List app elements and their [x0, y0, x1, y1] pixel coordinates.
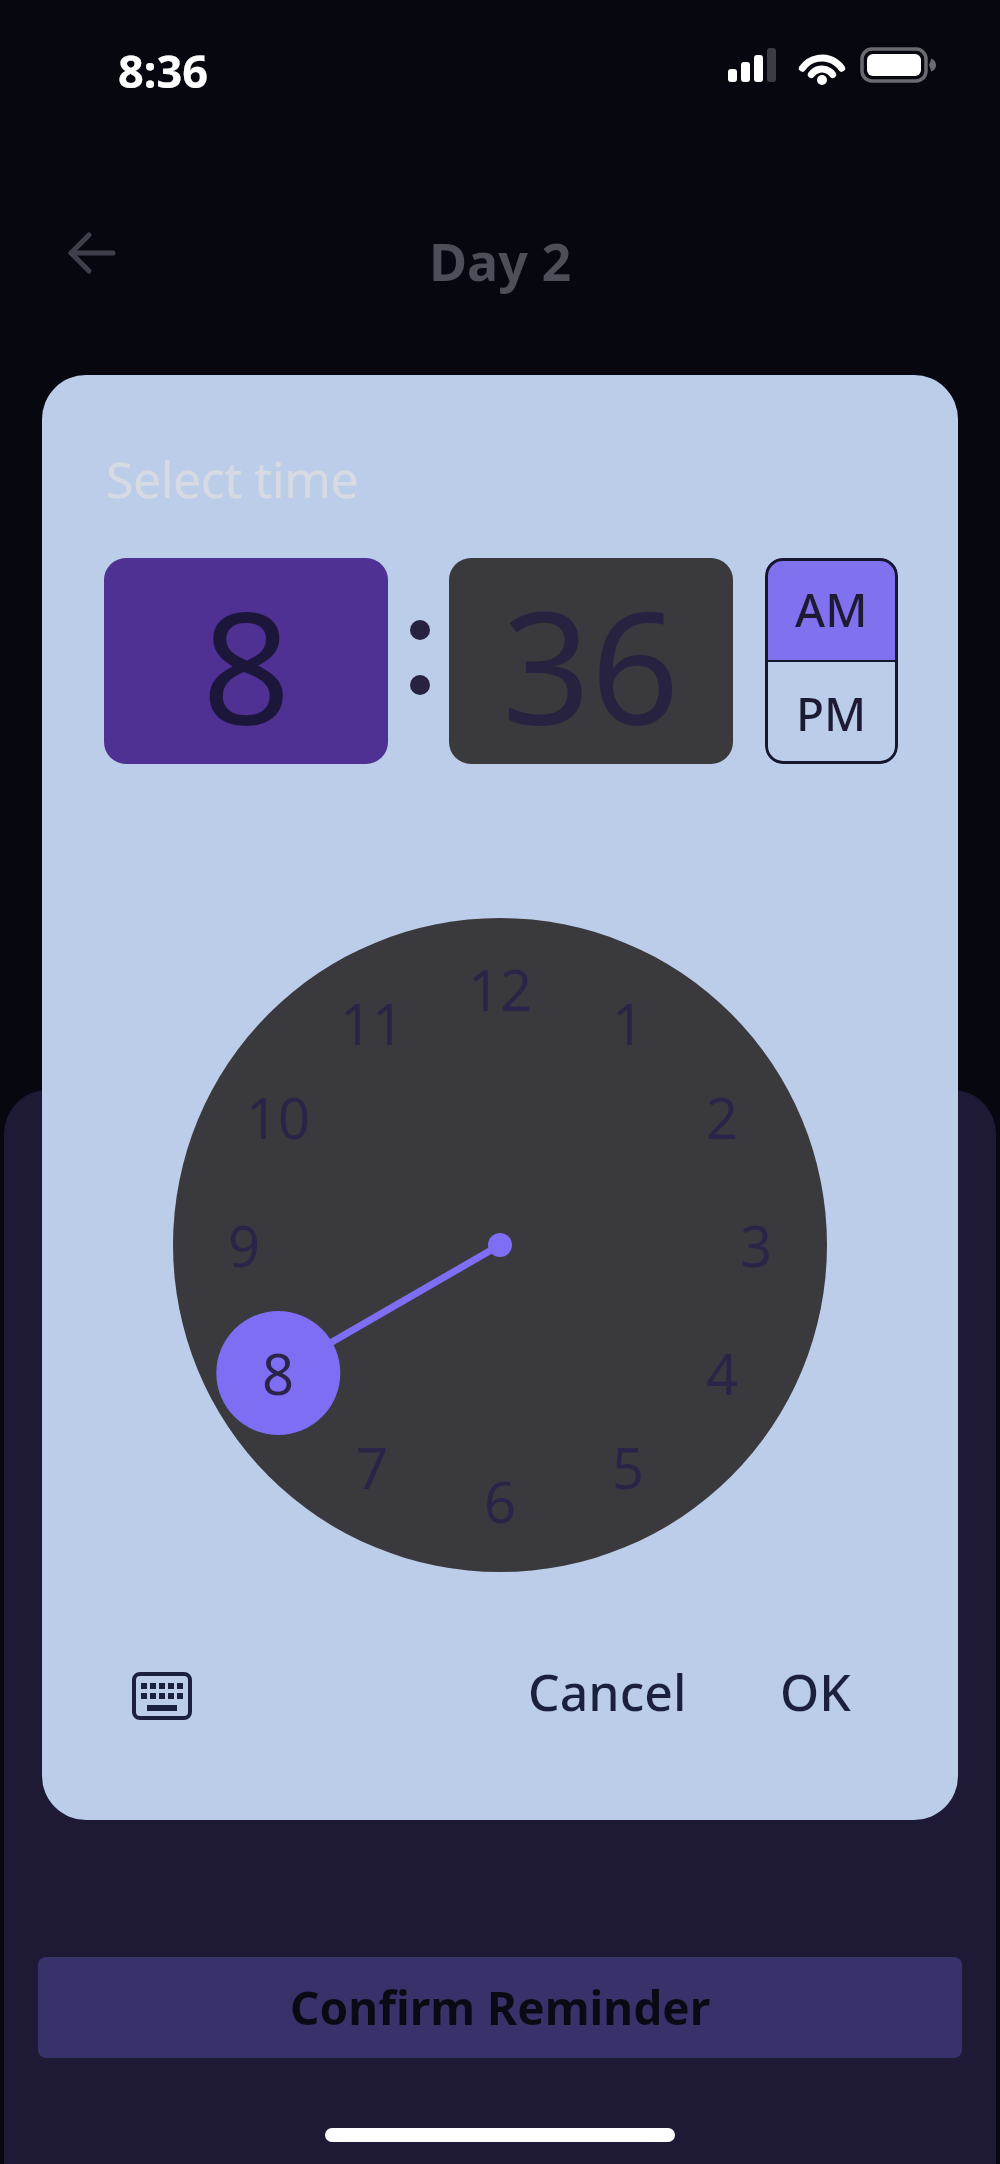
button[interactable]: 8	[104, 558, 388, 764]
staticText: 5	[612, 1429, 645, 1505]
staticText: AM	[795, 578, 868, 641]
staticText: 6	[484, 1463, 517, 1539]
staticText: Cancel	[528, 1658, 687, 1726]
staticText: 4	[706, 1335, 739, 1411]
button[interactable]: Cancel	[487, 1647, 727, 1737]
button[interactable]: OK	[745, 1647, 885, 1737]
button[interactable]: 3	[711, 1200, 801, 1290]
button[interactable]: 5	[583, 1422, 673, 1512]
staticText: 7	[356, 1429, 389, 1505]
button[interactable]: 1	[583, 978, 673, 1068]
button[interactable]: 7	[327, 1422, 417, 1512]
button[interactable]: 8	[233, 1328, 323, 1418]
staticText: 36	[502, 558, 680, 764]
button[interactable]: PM	[765, 662, 898, 764]
staticText: 9	[228, 1207, 261, 1283]
button[interactable]: 4	[677, 1328, 767, 1418]
staticText: 11	[340, 985, 405, 1061]
button[interactable]	[60, 222, 126, 284]
button[interactable]: 36	[449, 558, 733, 764]
button[interactable]: Confirm Reminder	[38, 1957, 962, 2058]
button[interactable]	[117, 1651, 207, 1741]
staticText: 3	[740, 1207, 773, 1283]
staticText: 2	[706, 1079, 739, 1155]
staticText: 8:36	[118, 40, 208, 101]
staticText: 12	[468, 951, 533, 1027]
staticText: 8	[202, 558, 291, 764]
staticText: Confirm Reminder	[290, 1976, 711, 2039]
button[interactable]: 9	[199, 1200, 289, 1290]
button[interactable]: 12	[455, 944, 545, 1034]
button[interactable]: 6	[455, 1456, 545, 1546]
staticText: PM	[796, 682, 867, 745]
button[interactable]: AM	[765, 558, 898, 660]
staticText: 8	[262, 1335, 295, 1411]
staticText: 1	[612, 985, 645, 1061]
button[interactable]: 10	[233, 1072, 323, 1162]
button[interactable]: 11	[327, 978, 417, 1068]
staticText: Day 2	[429, 225, 572, 296]
staticText: 10	[246, 1079, 311, 1155]
staticText: OK	[780, 1658, 851, 1726]
button[interactable]: 2	[677, 1072, 767, 1162]
staticText: Select time	[106, 445, 359, 513]
